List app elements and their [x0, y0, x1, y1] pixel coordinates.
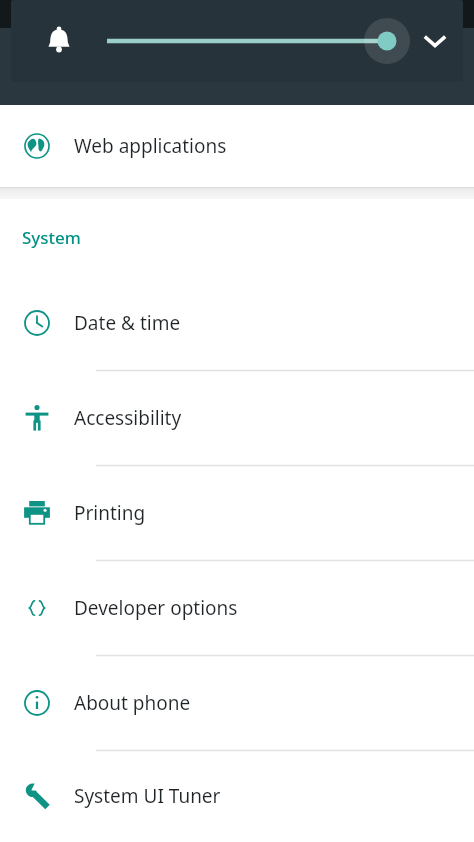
button[interactable]: Date & time	[0, 275, 474, 370]
staticText: Developer options	[74, 595, 238, 621]
staticText: About phone	[74, 690, 191, 716]
staticText: System UI Tuner	[74, 783, 221, 809]
button[interactable]: System UI Tuner	[0, 750, 474, 842]
staticText: Printing	[74, 500, 146, 526]
button[interactable]: Printing	[0, 465, 474, 560]
button[interactable]: Expand volume controls	[407, 0, 463, 82]
staticText: Web applications	[74, 133, 227, 159]
staticText: Accessibility	[74, 405, 182, 431]
button[interactable]: About phone	[0, 655, 474, 750]
button[interactable]: Web applications	[0, 105, 474, 187]
button[interactable]: Volume slider	[107, 0, 407, 82]
staticText: System	[22, 226, 81, 249]
button[interactable]: Accessibility	[0, 370, 474, 465]
button[interactable]: Developer options	[0, 560, 474, 655]
staticText: Date & time	[74, 310, 181, 336]
button[interactable]: Ringer volume	[11, 0, 107, 82]
